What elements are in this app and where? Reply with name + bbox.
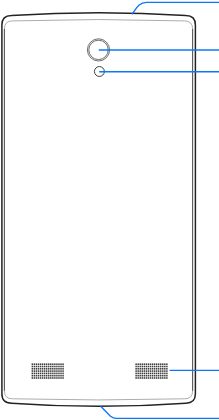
button[interactable]: Phone rear view diagram with callouts xyxy=(0,0,219,420)
